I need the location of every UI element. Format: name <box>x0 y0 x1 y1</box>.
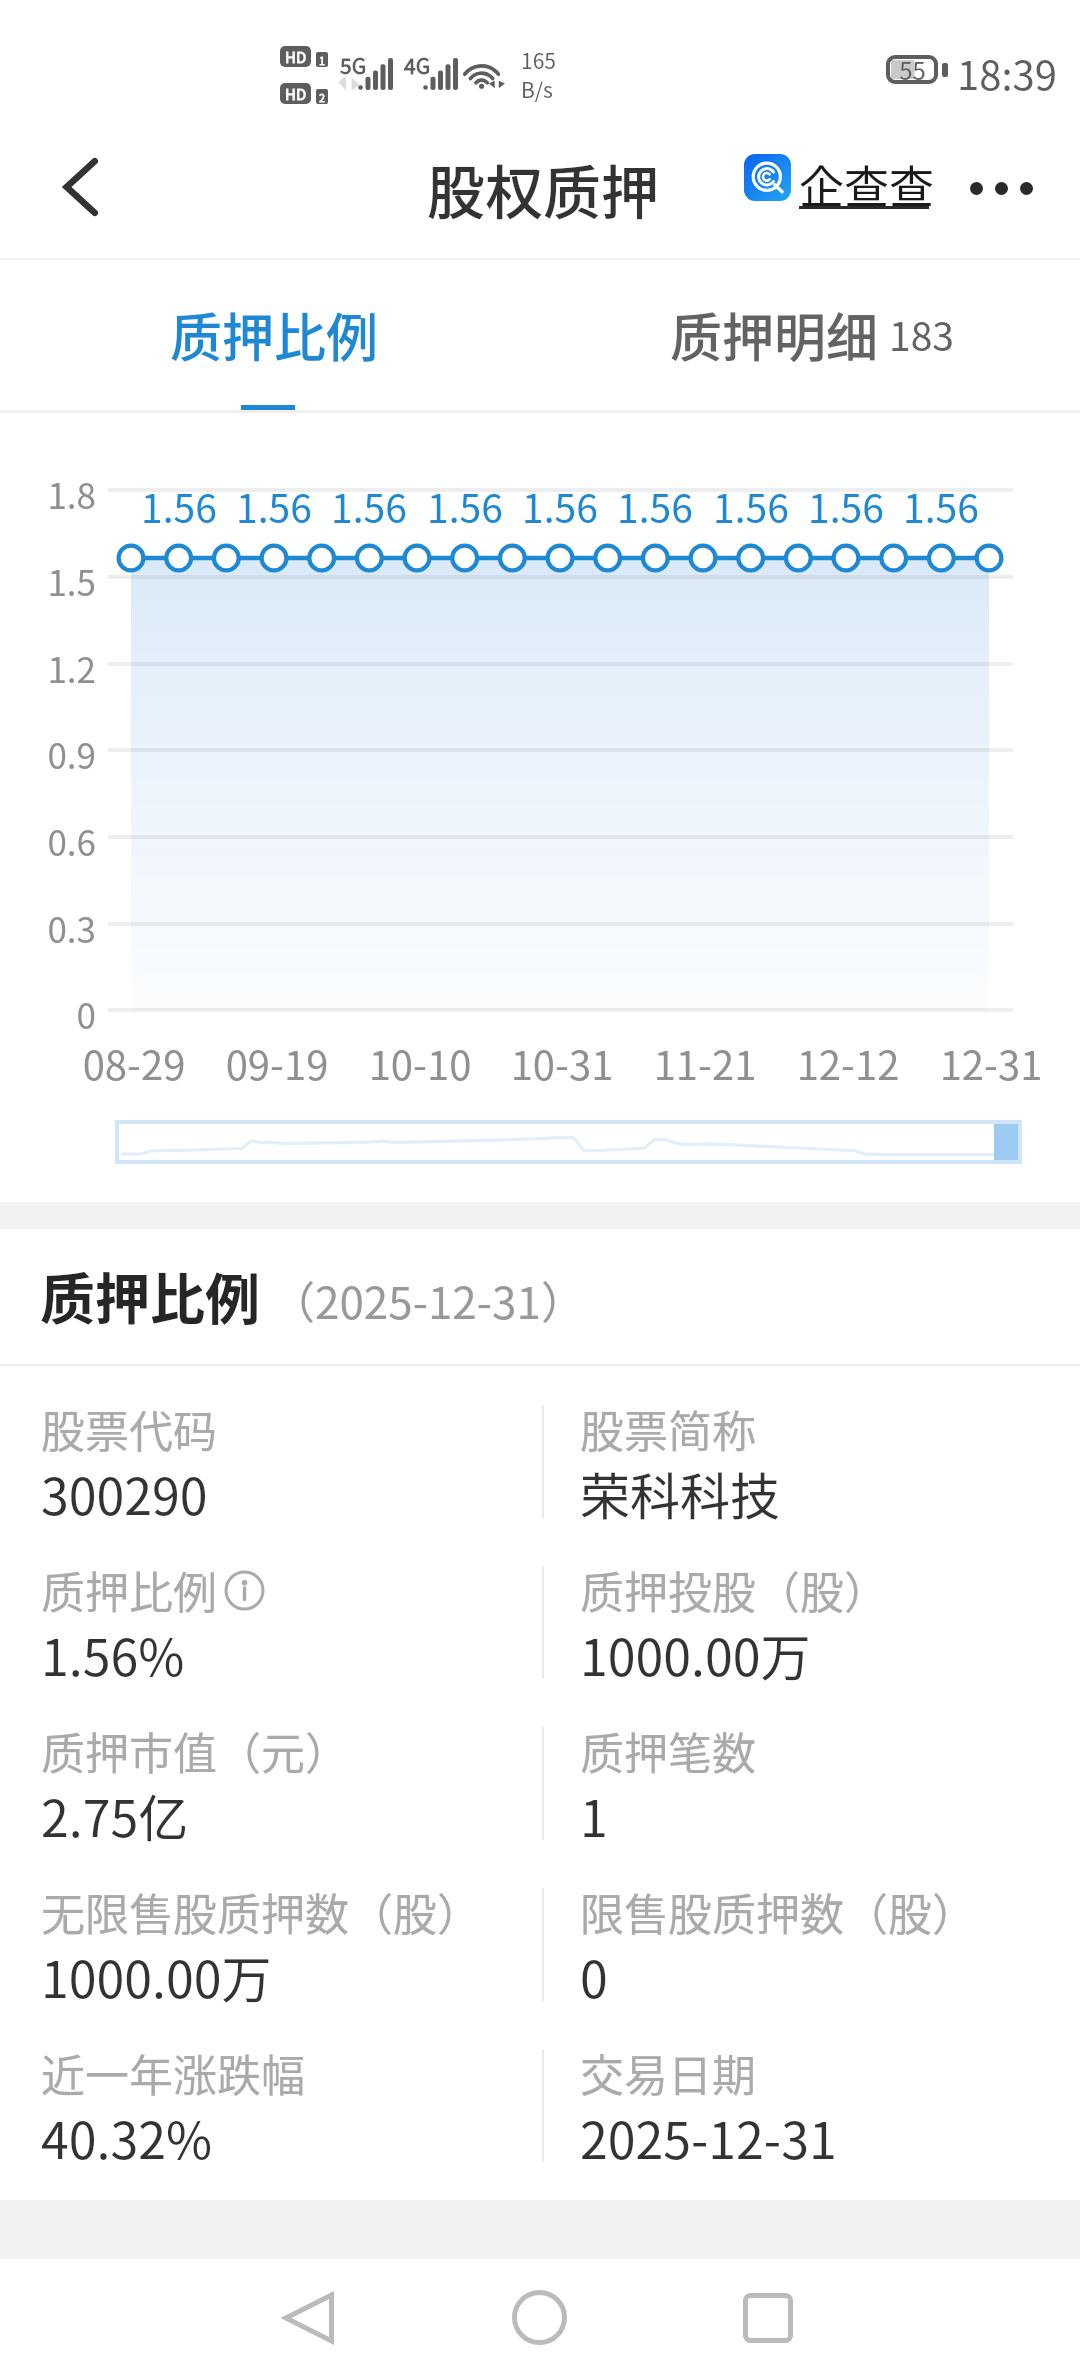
staticText: 09-19 <box>202 1034 352 1092</box>
staticText: 300290 <box>41 1457 208 1529</box>
staticText: 1.5 <box>3 555 96 606</box>
staticText: 1 <box>319 52 326 67</box>
staticText: 5G <box>340 50 367 80</box>
staticText: 质押比例 <box>170 297 379 372</box>
button[interactable]: Recents <box>708 2259 828 2376</box>
staticText: 1.56 <box>124 478 234 534</box>
staticText: 质押市值（元） <box>41 1719 349 1783</box>
staticText: 1.8 <box>3 468 96 519</box>
staticText: 荣科科技 <box>580 1457 780 1529</box>
staticText: 限售股质押数（股） <box>580 1880 976 1944</box>
staticText: （2025-12-31） <box>271 1268 585 1332</box>
staticText: 165 <box>521 45 556 75</box>
staticText: 08-29 <box>59 1034 209 1092</box>
staticText: 股票简称 <box>580 1397 756 1461</box>
button[interactable]: Back <box>26 132 136 242</box>
staticText: 股票代码 <box>41 1397 217 1461</box>
staticText: 0 <box>3 988 96 1039</box>
staticText: 近一年涨跌幅 <box>41 2041 305 2105</box>
staticText: HD <box>285 83 307 104</box>
button[interactable]: 质押明细 <box>540 260 1080 413</box>
staticText: 1.56 <box>600 478 710 534</box>
staticText: 1000.00万 <box>41 1940 272 2012</box>
staticText: 12-12 <box>773 1034 923 1092</box>
staticText: 1 <box>580 1779 608 1851</box>
staticText: 质押比例 <box>41 1558 217 1622</box>
staticText: 1.56 <box>886 478 996 534</box>
staticText: 12-31 <box>916 1034 1066 1092</box>
button[interactable] <box>0 1688 1080 1849</box>
button[interactable]: 质押比例 <box>0 260 540 413</box>
staticText: 2025-12-31 <box>580 2101 837 2173</box>
staticText: 183 <box>889 306 954 362</box>
staticText: 10-31 <box>487 1034 637 1092</box>
staticText: 2 <box>319 89 326 104</box>
staticText: 0.9 <box>3 728 96 779</box>
button[interactable]: More options <box>951 146 1051 230</box>
staticText: 0.6 <box>3 815 96 866</box>
staticText: 2.75亿 <box>41 1779 189 1851</box>
staticText: 0.3 <box>3 902 96 953</box>
staticText: 交易日期 <box>580 2041 756 2105</box>
staticText: 质押明细 <box>670 297 879 372</box>
staticText: 1000.00万 <box>580 1618 811 1690</box>
button[interactable] <box>0 1527 1080 1688</box>
staticText: 1.56% <box>41 1618 185 1690</box>
staticText: 0 <box>580 1940 608 2012</box>
staticText: 1.56 <box>410 478 520 534</box>
staticText: 1.56 <box>696 478 806 534</box>
staticText: 1.56 <box>505 478 615 534</box>
staticText: HD <box>285 46 307 67</box>
staticText: 1.56 <box>219 478 329 534</box>
staticText: 质押比例 <box>40 1255 261 1335</box>
button[interactable]: Home <box>479 2259 599 2376</box>
button[interactable]: 企查查 <box>744 152 935 220</box>
staticText: 无限售股质押数（股） <box>41 1880 481 1944</box>
staticText: 11-21 <box>630 1034 780 1092</box>
staticText: 4G <box>404 50 431 80</box>
staticText: 质押笔数 <box>580 1719 756 1783</box>
staticText: 55 <box>899 52 926 87</box>
button[interactable] <box>0 2010 1080 2171</box>
staticText: 1.56 <box>791 478 901 534</box>
staticText: B/s <box>521 74 553 104</box>
staticText: 18:39 <box>957 44 1057 102</box>
staticText: 1.56 <box>314 478 424 534</box>
button[interactable] <box>0 1366 1080 1527</box>
button[interactable]: Back <box>248 2259 368 2376</box>
staticText: 质押投股（股） <box>580 1558 888 1622</box>
staticText: 企查查 <box>799 152 935 217</box>
button[interactable] <box>0 1849 1080 2010</box>
staticText: 40.32% <box>41 2101 212 2173</box>
staticText: 股权质押 <box>427 147 660 231</box>
staticText: 10-10 <box>345 1034 495 1092</box>
staticText: 1.2 <box>3 642 96 693</box>
